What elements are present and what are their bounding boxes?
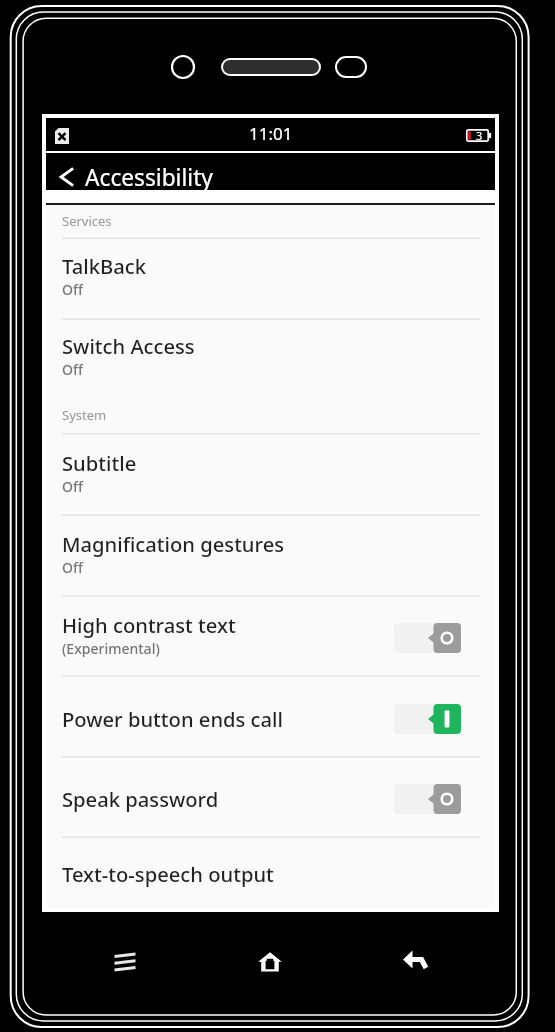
button[interactable]: Power button ends call [46, 678, 495, 759]
staticText: Off [62, 477, 83, 496]
staticText: Subtitle [62, 449, 137, 477]
button[interactable]: Toggle on [394, 704, 461, 734]
staticText: TalkBack [62, 252, 146, 280]
staticText: System [62, 406, 107, 424]
staticText: Services [62, 212, 112, 230]
button[interactable]: Back [391, 937, 439, 985]
button[interactable]: Text-to-speech output [46, 839, 495, 908]
button[interactable]: High contrast text [46, 597, 495, 678]
button[interactable]: Home [246, 938, 294, 986]
staticText: Off [62, 558, 83, 577]
staticText: Off [62, 280, 83, 299]
staticText: Accessibility [85, 162, 213, 193]
staticText: Magnification gestures [62, 530, 285, 558]
button[interactable]: Subtitle [46, 434, 495, 516]
staticText: Switch Access [62, 332, 195, 360]
button[interactable]: Back [56, 166, 74, 188]
staticText: High contrast text [62, 611, 236, 639]
staticText: (Experimental) [62, 639, 160, 658]
button[interactable]: Speak password [46, 759, 495, 839]
staticText: Off [62, 360, 83, 379]
button[interactable]: TalkBack [46, 238, 495, 319]
button[interactable]: Close [55, 128, 69, 144]
staticText: Text-to-speech output [62, 860, 274, 888]
button[interactable]: Switch Access [46, 319, 495, 398]
staticText: Power button ends call [62, 705, 283, 733]
button[interactable]: Magnification gestures [46, 516, 495, 597]
button[interactable]: Toggle off [394, 784, 461, 814]
button[interactable]: Toggle off [394, 623, 461, 653]
button[interactable]: Recents [101, 938, 149, 986]
staticText: 11:01 [249, 122, 293, 145]
staticText: 3 [476, 128, 483, 141]
staticText: Speak password [62, 785, 219, 813]
